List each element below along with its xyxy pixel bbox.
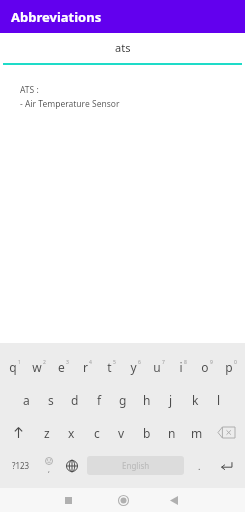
button[interactable]: d (63, 383, 87, 416)
staticText: m (191, 425, 203, 441)
staticText: i (179, 359, 183, 375)
staticText: g (119, 392, 127, 408)
button[interactable]: g (111, 383, 135, 416)
button[interactable]: Change language (60, 449, 84, 482)
button[interactable]: Shift (2, 416, 35, 449)
staticText: s (48, 392, 54, 408)
button[interactable]: Back (166, 492, 182, 508)
button[interactable]: t (99, 350, 123, 383)
staticText: English (122, 460, 150, 471)
button[interactable]: n (159, 416, 184, 449)
staticText: p (225, 359, 233, 375)
staticText: t (107, 359, 112, 375)
staticText: x (68, 425, 75, 441)
button[interactable]: Emoji (38, 449, 60, 482)
staticText: h (143, 392, 151, 408)
staticText: v (118, 425, 125, 441)
staticText: c (94, 425, 100, 441)
staticText: . (198, 460, 201, 472)
staticText: ats (115, 40, 131, 55)
button[interactable]: u (147, 350, 171, 383)
button[interactable]: o (195, 350, 219, 383)
button[interactable]: e (51, 350, 75, 383)
button[interactable]: Recent apps (60, 492, 76, 508)
staticText: o (201, 359, 209, 375)
button[interactable]: y (123, 350, 147, 383)
button[interactable]: ats (0, 33, 245, 63)
button[interactable]: h (135, 383, 159, 416)
button[interactable]: l (207, 383, 231, 416)
button[interactable]: f (87, 383, 111, 416)
button[interactable]: i (171, 350, 195, 383)
button[interactable]: r (75, 350, 99, 383)
staticText: 8 (184, 359, 187, 366)
button[interactable]: ?123 (4, 449, 38, 482)
staticText: y (130, 359, 137, 375)
button[interactable]: k (183, 383, 207, 416)
button[interactable]: s (39, 383, 63, 416)
staticText: 7 (162, 359, 165, 366)
staticText: 6 (138, 359, 141, 366)
staticText: q (9, 359, 17, 375)
button[interactable]: b (134, 416, 159, 449)
button[interactable]: q (2, 350, 27, 383)
staticText: Abbreviations (11, 8, 102, 26)
button[interactable]: Backspace (209, 416, 243, 449)
staticText: 5 (113, 359, 116, 366)
button[interactable]: a (14, 383, 39, 416)
staticText: n (168, 425, 176, 441)
staticText: 4 (89, 359, 92, 366)
button[interactable]: v (109, 416, 134, 449)
staticText: f (97, 392, 102, 408)
button[interactable]: English (87, 456, 184, 475)
staticText: j (169, 392, 173, 408)
button[interactable]: Enter (211, 449, 241, 482)
staticText: 2 (43, 359, 46, 366)
staticText: ?123 (12, 460, 30, 471)
button[interactable]: m (184, 416, 209, 449)
staticText: a (23, 392, 30, 408)
staticText: 1 (18, 359, 21, 366)
button[interactable]: Home (114, 491, 132, 509)
staticText: k (192, 392, 199, 408)
staticText: 0 (234, 359, 237, 366)
staticText: 9 (210, 359, 213, 366)
button[interactable]: . (187, 449, 211, 482)
button[interactable]: p (219, 350, 243, 383)
staticText: , (48, 465, 50, 475)
button[interactable]: w (27, 350, 51, 383)
button[interactable]: x (59, 416, 84, 449)
button[interactable]: c (84, 416, 109, 449)
staticText: z (44, 425, 50, 441)
staticText: ATS : (20, 84, 39, 96)
button[interactable]: j (159, 383, 183, 416)
button[interactable]: z (35, 416, 59, 449)
staticText: w (32, 359, 42, 375)
staticText: d (71, 392, 79, 408)
staticText: r (83, 359, 88, 375)
staticText: u (153, 359, 161, 375)
staticText: e (58, 359, 65, 375)
staticText: 3 (66, 359, 69, 366)
staticText: l (217, 392, 221, 408)
staticText: - Air Temperature Sensor (20, 98, 120, 110)
staticText: b (143, 425, 151, 441)
